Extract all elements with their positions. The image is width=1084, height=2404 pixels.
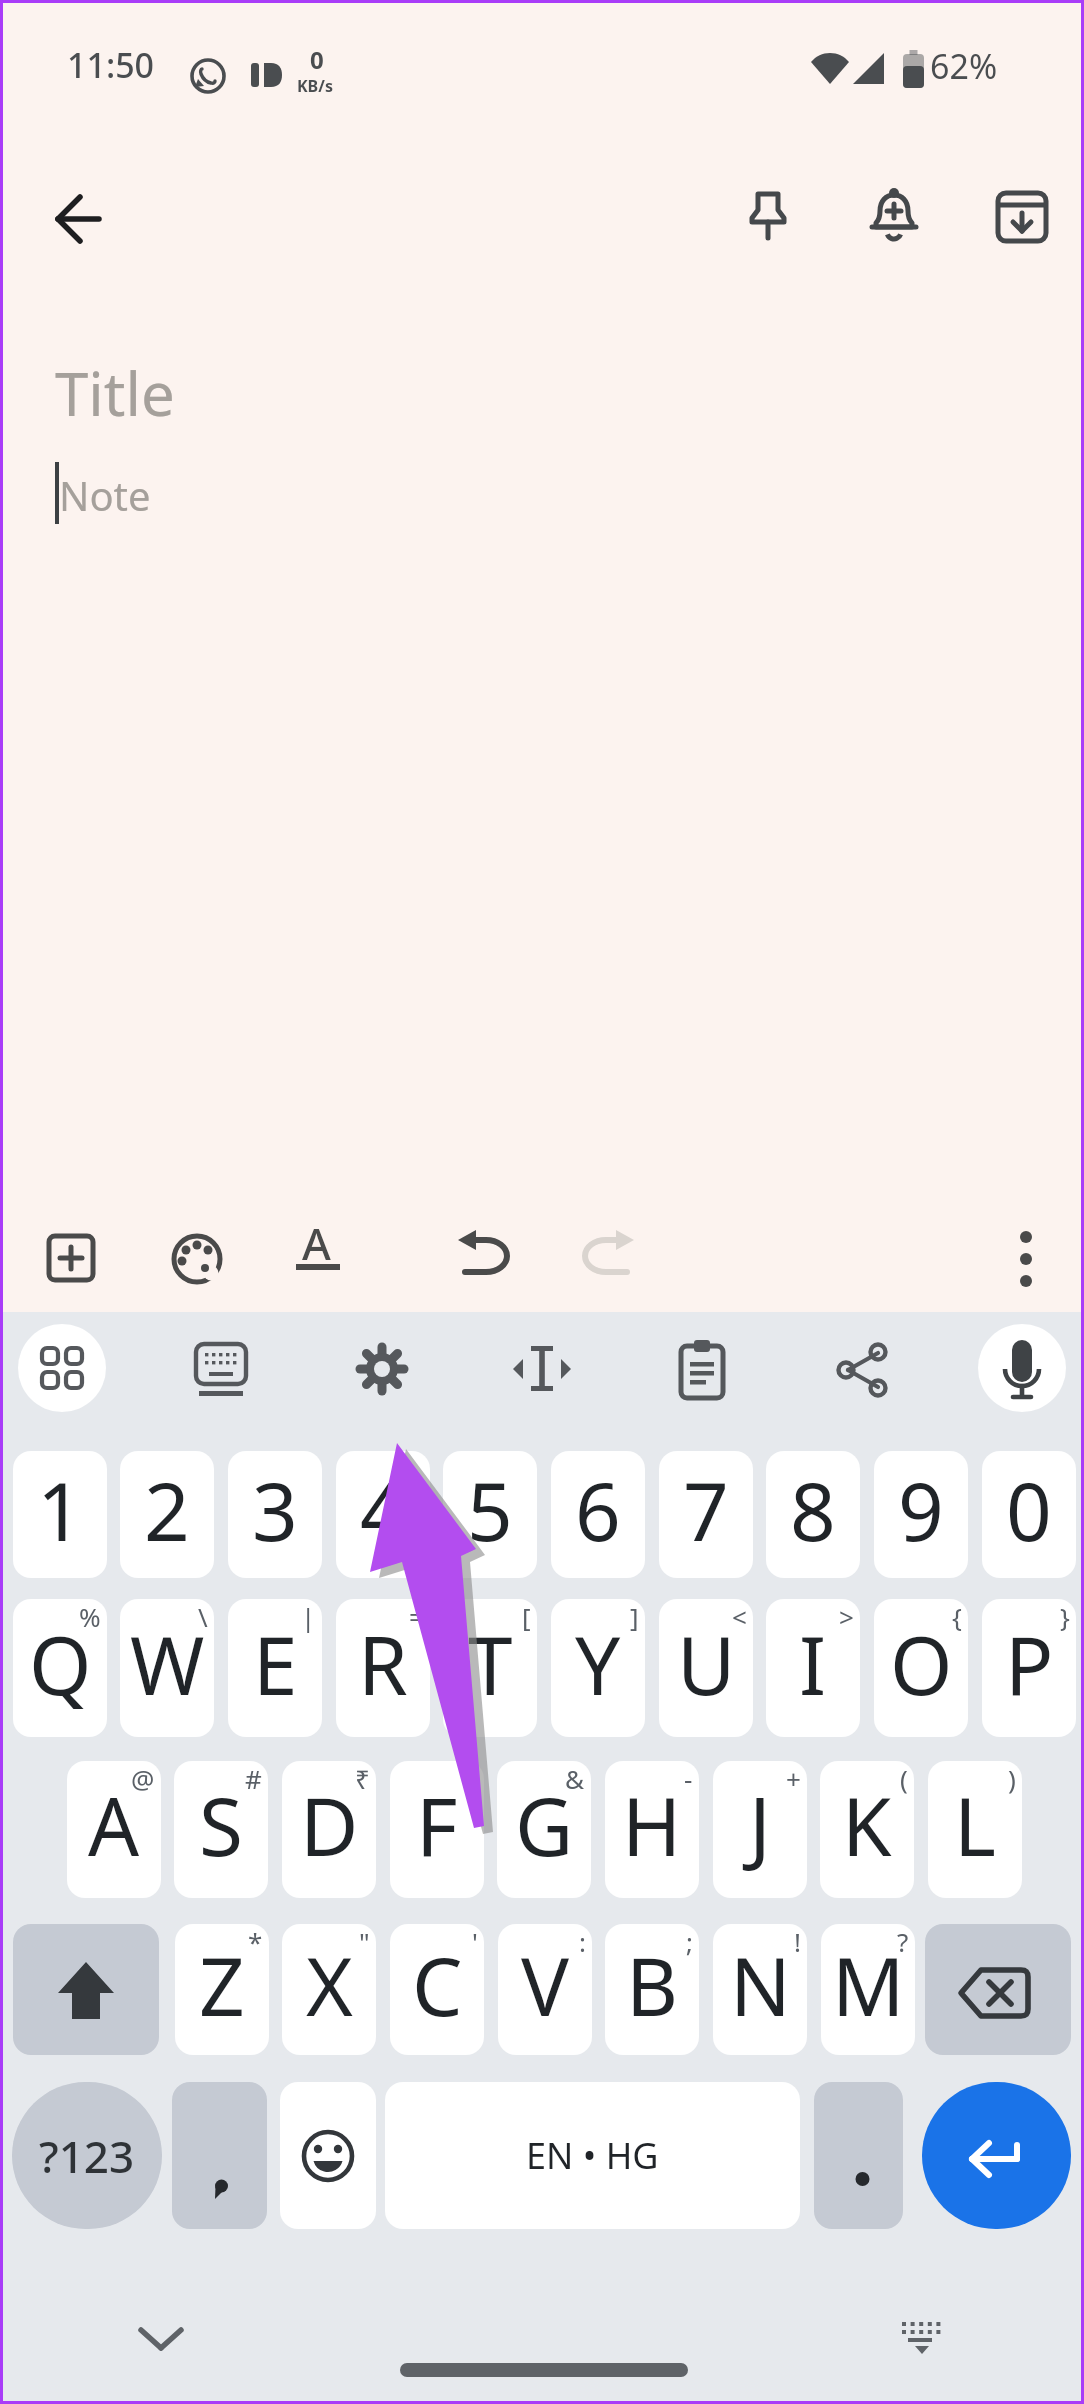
button[interactable]: 3	[228, 1451, 322, 1578]
button[interactable]: 1	[13, 1451, 107, 1578]
staticText: R	[358, 1609, 408, 1718]
button[interactable]: 2	[120, 1451, 214, 1578]
button[interactable]	[998, 1338, 1046, 1404]
staticText: "	[359, 1924, 370, 1959]
button[interactable]	[898, 2318, 946, 2358]
button[interactable]: ?123	[12, 2082, 162, 2229]
staticText: '	[472, 1924, 478, 1959]
button[interactable]	[172, 2082, 267, 2229]
button[interactable]	[922, 2082, 1071, 2229]
button[interactable]	[996, 191, 1050, 245]
staticText: -	[684, 1761, 693, 1796]
button[interactable]: H	[605, 1761, 699, 1898]
button[interactable]: R	[336, 1599, 430, 1737]
button[interactable]: W	[120, 1599, 214, 1737]
button[interactable]: M	[821, 1924, 915, 2055]
button[interactable]	[18, 1324, 106, 1412]
button[interactable]	[903, 50, 924, 88]
button[interactable]	[42, 1229, 100, 1287]
staticText: 11:50	[67, 42, 155, 88]
button[interactable]	[280, 2082, 376, 2229]
button[interactable]	[400, 2363, 688, 2377]
button[interactable]: 8	[766, 1451, 860, 1578]
button[interactable]: C	[390, 1924, 484, 2055]
button[interactable]: A	[67, 1761, 161, 1898]
button[interactable]	[167, 1229, 227, 1289]
button[interactable]	[811, 53, 849, 85]
staticText: U	[677, 1609, 736, 1718]
button[interactable]	[853, 53, 885, 85]
button[interactable]	[50, 191, 106, 247]
button[interactable]: EN • HG	[385, 2082, 800, 2229]
button[interactable]: F	[390, 1761, 484, 1898]
button[interactable]: 0	[982, 1451, 1076, 1578]
button[interactable]: S	[174, 1761, 268, 1898]
staticText: X	[306, 1930, 353, 2039]
button[interactable]	[136, 2320, 186, 2356]
button[interactable]: N	[713, 1924, 807, 2055]
button[interactable]	[453, 1225, 513, 1281]
button[interactable]: K	[820, 1761, 914, 1898]
button[interactable]	[868, 187, 920, 245]
staticText: ?123	[39, 2126, 135, 2186]
staticText: ₹	[355, 1761, 370, 1796]
button[interactable]: 9	[874, 1451, 968, 1578]
button[interactable]: X	[282, 1924, 376, 2055]
button[interactable]: T	[443, 1599, 537, 1737]
staticText: *	[248, 1924, 263, 1959]
button[interactable]	[579, 1225, 639, 1281]
button[interactable]	[510, 1342, 574, 1398]
staticText: &	[565, 1761, 585, 1796]
staticText: Y	[575, 1609, 621, 1718]
staticText: |	[301, 1599, 316, 1634]
button[interactable]	[40, 1346, 84, 1390]
button[interactable]: 5	[443, 1451, 537, 1578]
button[interactable]: U	[659, 1599, 753, 1737]
button[interactable]	[678, 1340, 728, 1402]
staticText: >	[839, 1599, 854, 1634]
button[interactable]	[925, 1924, 1071, 2055]
button[interactable]	[836, 1342, 890, 1398]
button[interactable]	[47, 452, 1037, 1192]
staticText: 62%	[930, 43, 998, 89]
staticText: +	[786, 1761, 801, 1796]
button[interactable]: Q	[13, 1599, 107, 1737]
button[interactable]: P	[982, 1599, 1076, 1737]
button[interactable]: D	[282, 1761, 376, 1898]
button[interactable]: J	[713, 1761, 807, 1898]
staticText: A	[88, 1770, 140, 1879]
button[interactable]: Z	[175, 1924, 269, 2055]
button[interactable]: V	[498, 1924, 592, 2055]
staticText: \	[198, 1599, 208, 1634]
staticText: 8	[790, 1455, 836, 1564]
button[interactable]	[13, 1924, 159, 2055]
button[interactable]	[47, 347, 1037, 447]
button[interactable]: E	[228, 1599, 322, 1737]
staticText: !	[794, 1924, 801, 1959]
button[interactable]: 6	[551, 1451, 645, 1578]
staticText: 4	[360, 1455, 406, 1564]
button[interactable]: B	[605, 1924, 699, 2055]
button[interactable]: 7	[659, 1451, 753, 1578]
button[interactable]	[1004, 1225, 1048, 1293]
button[interactable]: G	[497, 1761, 591, 1898]
staticText: @	[131, 1761, 155, 1796]
button[interactable]	[742, 188, 794, 244]
button[interactable]	[814, 2082, 903, 2229]
staticText: G	[515, 1770, 574, 1879]
button[interactable]	[251, 63, 285, 89]
button[interactable]: 4	[336, 1451, 430, 1578]
button[interactable]	[354, 1342, 410, 1398]
button[interactable]: L	[928, 1761, 1022, 1898]
button[interactable]: O	[874, 1599, 968, 1737]
button[interactable]	[194, 1342, 250, 1398]
button[interactable]	[978, 1324, 1066, 1412]
button[interactable]: Y	[551, 1599, 645, 1737]
staticText: O	[890, 1609, 953, 1718]
staticText: A	[302, 1213, 331, 1273]
button[interactable]: I	[766, 1599, 860, 1737]
staticText: ]	[630, 1599, 639, 1634]
button[interactable]	[189, 57, 229, 97]
